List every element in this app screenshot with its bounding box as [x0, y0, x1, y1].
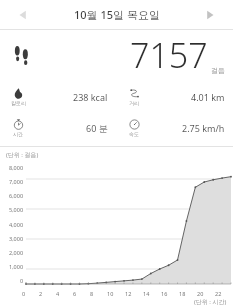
button[interactable]: 시간 — [0, 113, 116, 142]
staticText: 238 kcal — [73, 91, 108, 103]
staticText: 16 — [161, 290, 168, 297]
staticText: 3,000 — [9, 235, 24, 242]
staticText: 20 — [197, 290, 204, 297]
staticText: 8,000 — [9, 164, 24, 171]
button[interactable]: Previous day — [8, 0, 38, 29]
staticText: 5,000 — [9, 206, 24, 213]
staticText: 4 — [56, 290, 60, 297]
staticText: 60 분 — [86, 122, 108, 134]
staticText: 7,000 — [9, 178, 24, 185]
staticText: (단위 : 시간) — [194, 298, 227, 306]
staticText: 2.75 km/h — [182, 122, 225, 134]
staticText: 0 — [20, 277, 24, 284]
staticText: 4.01 km — [191, 91, 225, 103]
staticText: 6,000 — [9, 192, 24, 199]
staticText: (단위 : 걸음) — [6, 151, 39, 159]
other: Steps — [10, 41, 38, 69]
staticText: 시간 — [13, 131, 23, 137]
button[interactable]: 속도 — [116, 113, 233, 142]
staticText: 4,000 — [9, 221, 24, 228]
staticText: 22 — [215, 290, 222, 297]
staticText: 14 — [143, 290, 150, 297]
staticText: 6 — [73, 290, 77, 297]
staticText: 0 — [22, 290, 26, 297]
staticText: 칼로리 — [11, 100, 26, 106]
staticText: 12 — [125, 290, 132, 297]
staticText: 거리 — [129, 100, 139, 106]
staticText: 2 — [39, 290, 43, 297]
staticText: 10 — [107, 290, 114, 297]
staticText: 1,000 — [9, 263, 24, 270]
button[interactable]: 거리 — [116, 82, 233, 111]
button[interactable]: Steps — [0, 30, 233, 80]
staticText: 7157 — [130, 32, 208, 78]
staticText: 8 — [90, 290, 94, 297]
staticText: 걸음 — [211, 66, 225, 75]
staticText: 속도 — [129, 131, 139, 137]
staticText: 2,000 — [9, 249, 24, 256]
button[interactable]: Next day — [195, 0, 225, 29]
staticText: 10월 15일 목요일 — [74, 7, 160, 22]
button[interactable]: 칼로리 — [0, 82, 116, 111]
staticText: 18 — [179, 290, 186, 297]
